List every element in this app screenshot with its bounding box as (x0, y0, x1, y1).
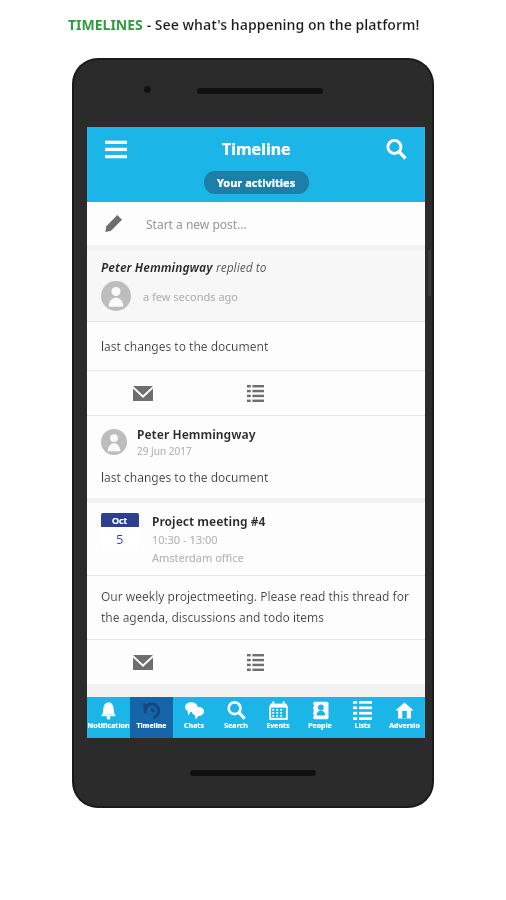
button[interactable]: Start a new post... (87, 202, 425, 245)
staticText: Peter Hemmingway (137, 426, 256, 442)
button[interactable]: Adversio (383, 697, 425, 738)
staticText: 29 Jun 2017 (137, 444, 192, 458)
staticText: - See what's happening on the platform! (143, 15, 420, 34)
button[interactable]: People (299, 697, 341, 738)
staticText: Your activities (217, 175, 296, 190)
button[interactable]: Message (87, 640, 199, 684)
button[interactable]: Lists (341, 697, 383, 738)
button[interactable]: Message (87, 371, 199, 415)
button[interactable]: Notifications (87, 697, 130, 738)
button[interactable]: Oct (87, 503, 425, 684)
staticText: Adversio (389, 721, 420, 731)
staticText: Our weekly projectmeeting. Please read t… (101, 588, 409, 604)
button[interactable]: Search (215, 697, 257, 738)
staticText: Timeline (136, 721, 167, 731)
staticText: 10:30 - 13:00 (152, 532, 218, 547)
staticText: Start a new post... (146, 216, 247, 232)
button[interactable]: Details list (199, 640, 312, 684)
staticText: Notifications (87, 721, 130, 731)
button[interactable]: Details list (199, 371, 312, 415)
staticText: Chats (184, 721, 204, 731)
button[interactable]: Events (257, 697, 299, 738)
button[interactable]: Peter Hemmingway (87, 250, 425, 498)
button[interactable]: Chats (173, 697, 215, 738)
staticText: last changes to the document (101, 469, 269, 485)
staticText: a few seconds ago (143, 289, 238, 304)
staticText: Oct (112, 514, 128, 526)
staticText: Peter Hemmingway (101, 259, 213, 275)
staticText: replied to (213, 259, 267, 275)
button[interactable]: Your activities (204, 171, 309, 194)
staticText: 5 (116, 530, 124, 548)
staticText: Timeline (222, 138, 291, 160)
staticText: last changes to the document (101, 338, 269, 354)
staticText: Project meeting #4 (152, 513, 266, 529)
staticText: TIMELINES (68, 15, 143, 34)
staticText: Lists (354, 721, 371, 731)
staticText: Search (224, 721, 248, 731)
staticText: Amsterdam office (152, 550, 244, 565)
staticText: the agenda, discussions and todo items (101, 609, 325, 625)
staticText: People (308, 721, 332, 731)
button[interactable]: Open navigation menu (99, 132, 133, 166)
staticText: Events (266, 721, 290, 731)
button[interactable]: Timeline (130, 697, 173, 738)
button[interactable]: Search (379, 132, 413, 166)
